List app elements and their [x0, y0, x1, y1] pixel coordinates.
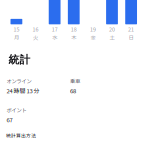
staticText: 15	[13, 25, 19, 33]
staticText: 17	[52, 25, 58, 33]
staticText: 20	[109, 25, 115, 33]
staticText: 月	[14, 33, 19, 41]
staticText: 16	[32, 25, 38, 33]
staticText: 火	[33, 33, 38, 41]
staticText: 21	[128, 25, 134, 33]
staticText: 24 時間 13 分	[6, 86, 39, 95]
staticText: 日	[129, 33, 134, 41]
staticText: 土	[109, 33, 114, 41]
staticText: 統計	[8, 53, 30, 66]
staticText: 乗車	[70, 77, 80, 85]
staticText: 68	[70, 86, 76, 95]
staticText: 67	[6, 115, 12, 124]
staticText: オンライン	[6, 77, 31, 85]
staticText: 19	[90, 25, 96, 33]
staticText: ポイント	[6, 106, 26, 114]
staticText: 統計算出方法	[6, 132, 36, 139]
staticText: 18	[71, 25, 77, 33]
staticText: 金	[90, 33, 95, 41]
staticText: 水	[52, 33, 57, 41]
staticText: 木	[71, 33, 76, 41]
